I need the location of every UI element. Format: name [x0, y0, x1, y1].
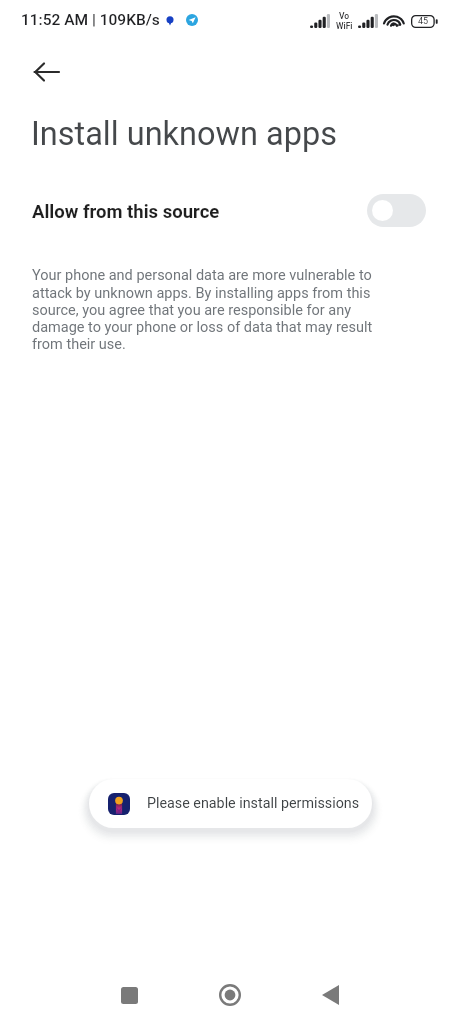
staticText: Your phone and personal data are more vu…: [32, 267, 381, 352]
button[interactable]: Back: [29, 54, 64, 89]
staticText: 11:52 AM | 109KB/s: [21, 11, 160, 29]
staticText: Install unknown apps: [31, 115, 337, 153]
button[interactable]: Allow from this source: [0, 180, 461, 244]
button[interactable]: Home: [206, 971, 254, 1019]
staticText: Please enable install permissions: [147, 795, 360, 812]
staticText: WiFi: [336, 21, 353, 31]
staticText: 45: [418, 16, 429, 27]
button[interactable]: Allow from this source toggle, off: [367, 194, 426, 227]
button[interactable]: Recent apps: [105, 971, 153, 1019]
button[interactable]: Back: [306, 971, 354, 1019]
staticText: Vo: [339, 11, 350, 21]
staticText: Allow from this source: [32, 201, 220, 223]
